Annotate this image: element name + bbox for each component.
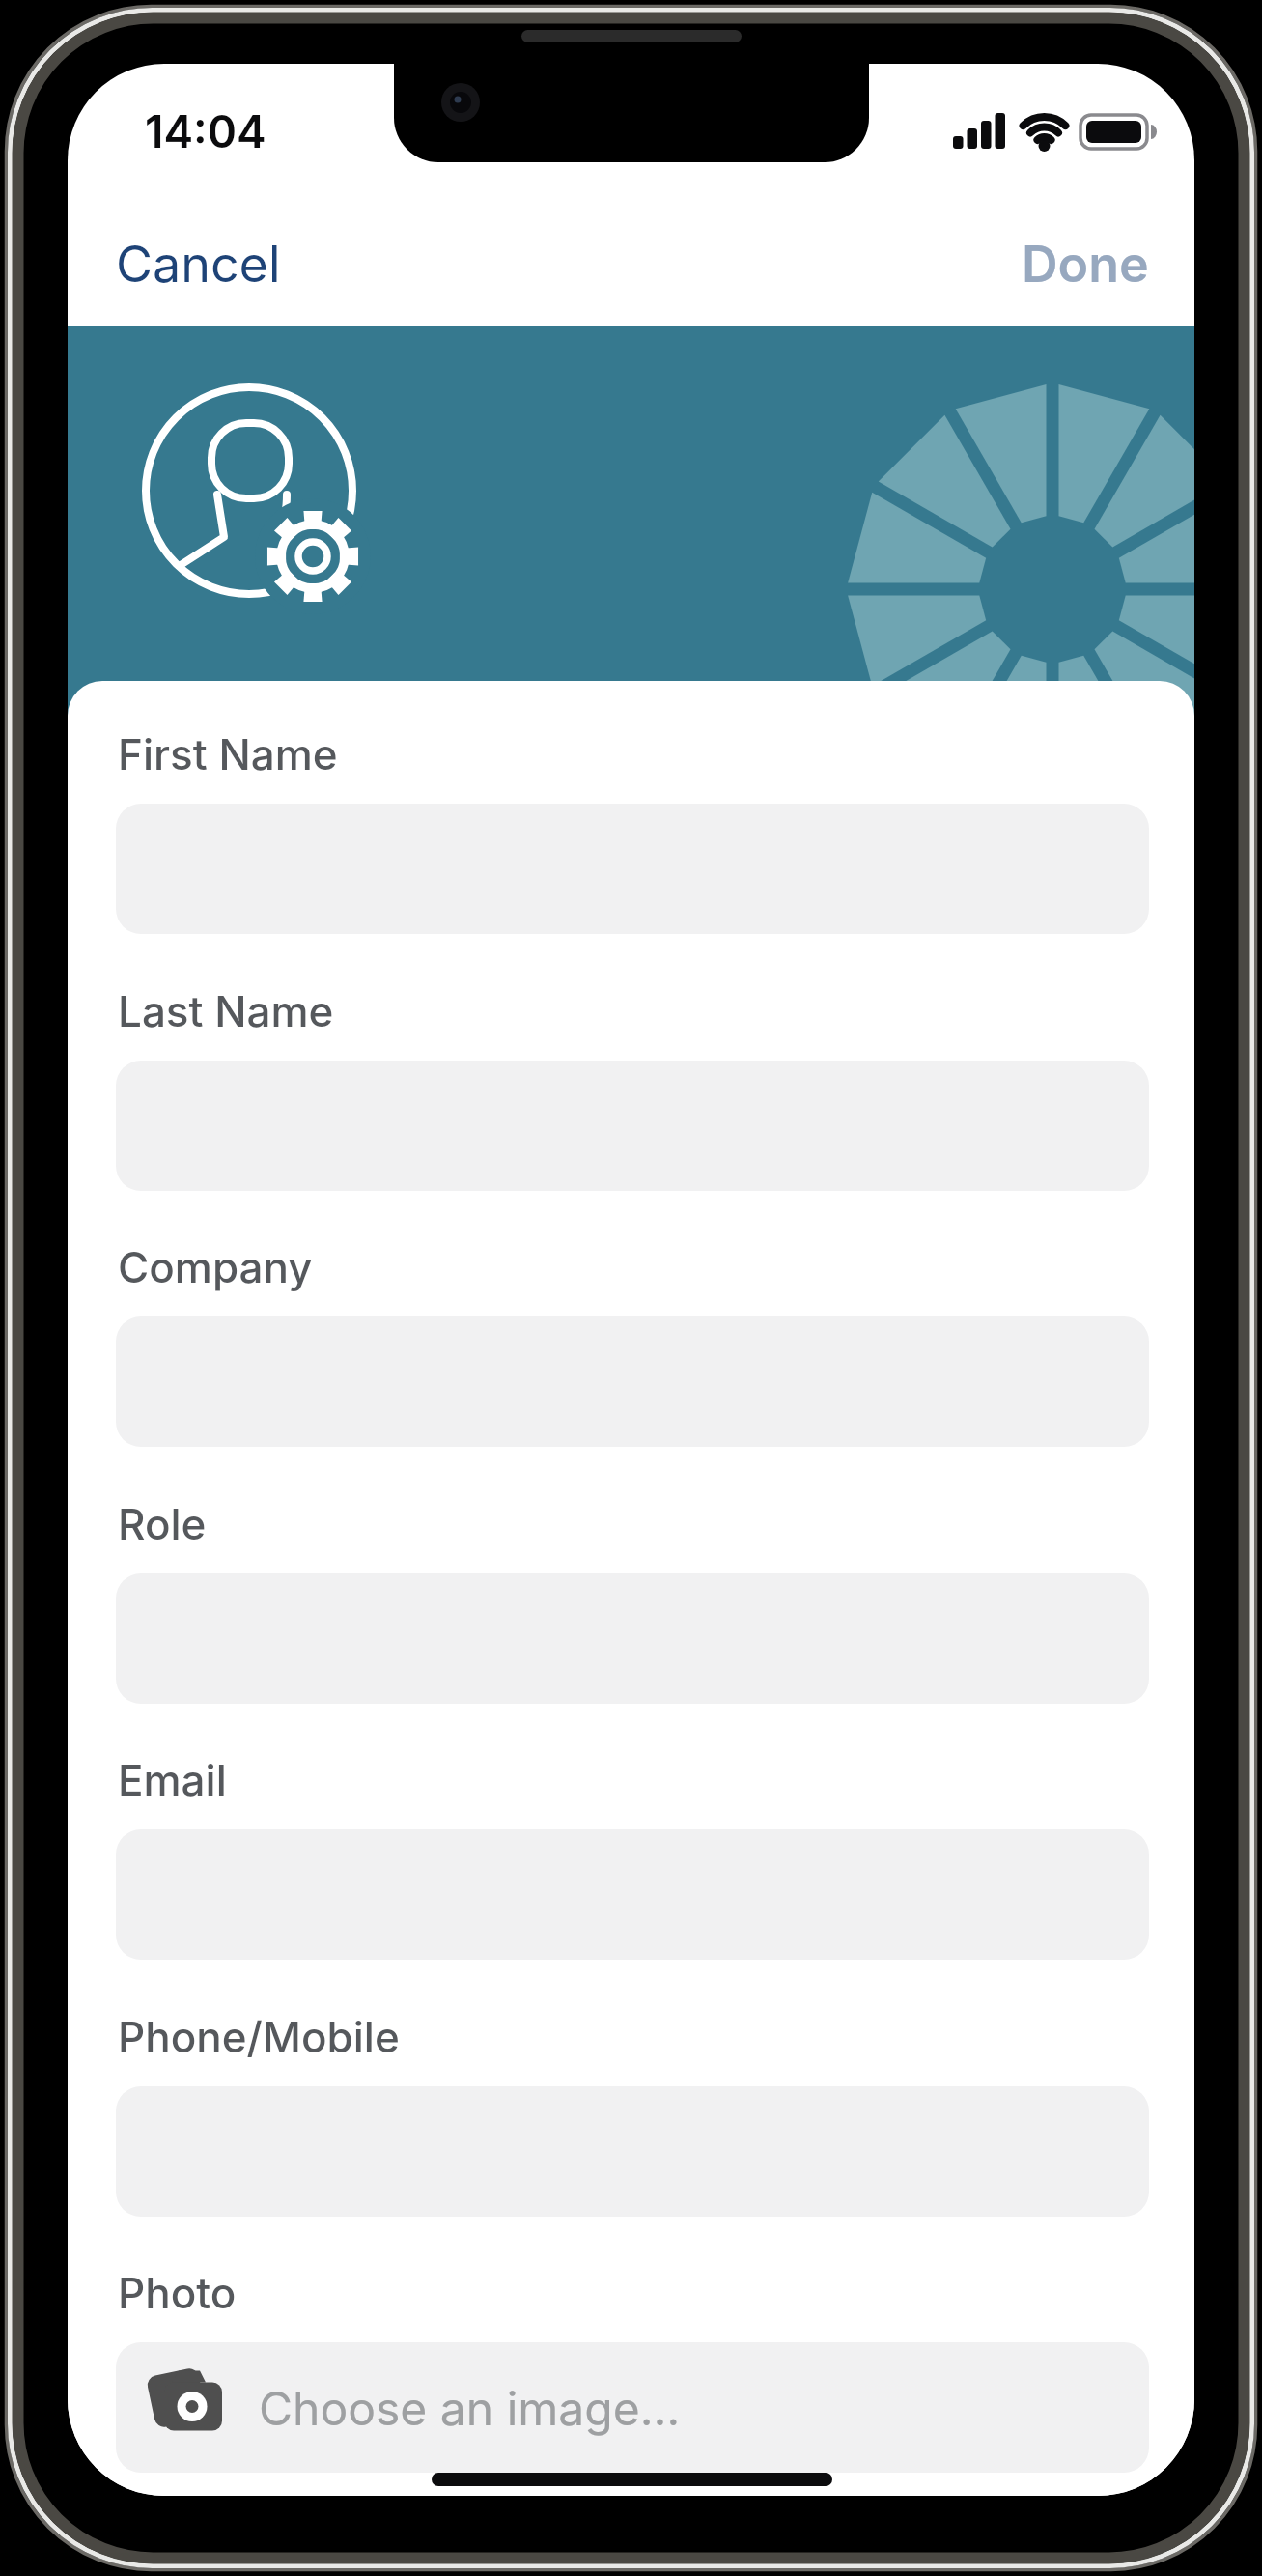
staticText: Cancel xyxy=(116,234,281,295)
staticText: Choose an image… xyxy=(259,2380,681,2436)
button[interactable]: Choose an image… xyxy=(116,2342,1149,2473)
staticText: Role xyxy=(118,1498,207,1549)
staticText: Email xyxy=(118,1754,227,1805)
button[interactable]: Cancel xyxy=(116,234,281,295)
staticText: Done xyxy=(1022,234,1149,295)
staticText: First Name xyxy=(118,728,338,779)
staticText: Last Name xyxy=(118,985,334,1036)
staticText: Company xyxy=(118,1241,313,1292)
button[interactable]: Done xyxy=(917,234,1149,296)
staticText: Photo xyxy=(118,2267,237,2318)
staticText: 14:04 xyxy=(145,104,266,158)
staticText: Phone/Mobile xyxy=(118,2011,400,2062)
